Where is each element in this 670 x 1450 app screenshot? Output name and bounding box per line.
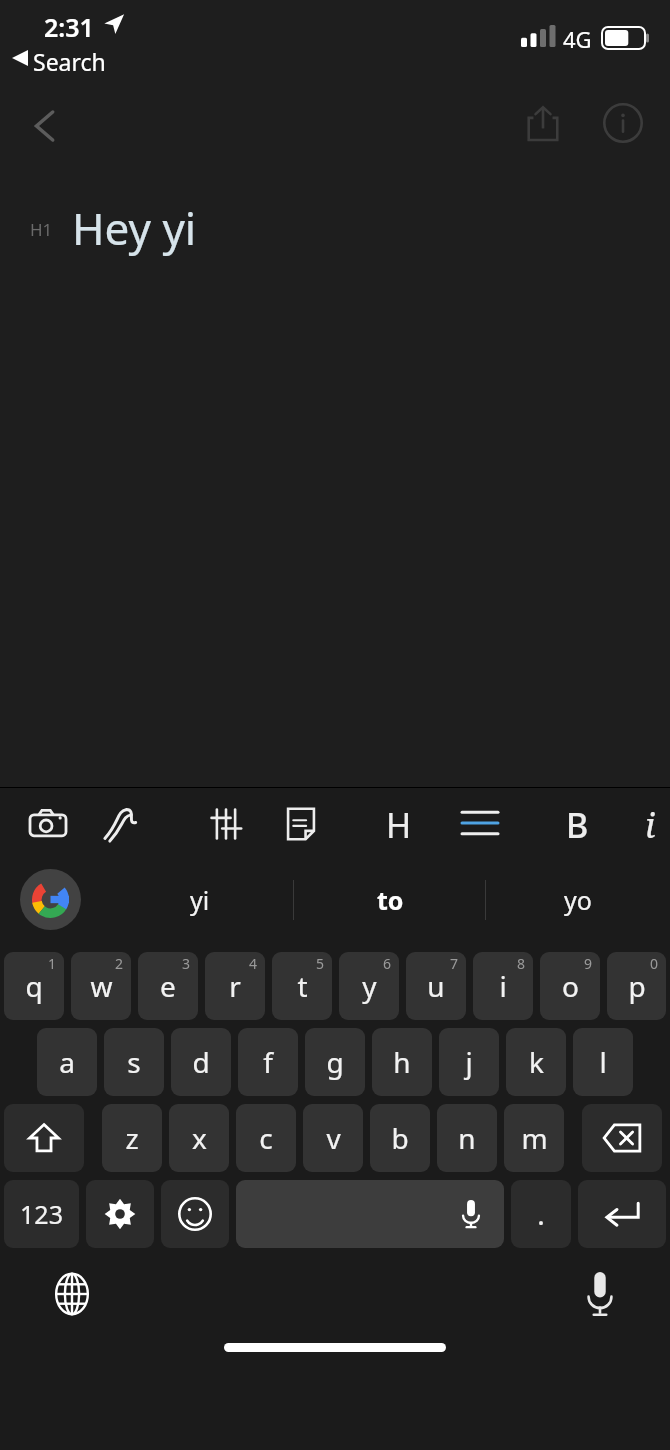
button[interactable]: Shift (4, 1104, 84, 1172)
button[interactable]: Note (277, 800, 325, 848)
staticText: n (458, 1119, 476, 1157)
button[interactable]: Change language (44, 1266, 100, 1322)
staticText: to (377, 883, 404, 917)
button[interactable]: Emoji (161, 1180, 229, 1248)
staticText: 1 (48, 954, 57, 973)
staticText: . (537, 1195, 545, 1233)
button[interactable]: k (506, 1028, 566, 1096)
staticText: 6 (383, 954, 392, 973)
button[interactable]: o (540, 952, 600, 1020)
staticText: a (59, 1043, 75, 1081)
button[interactable]: s (104, 1028, 164, 1096)
button[interactable]: Share (516, 96, 570, 150)
button[interactable]: f (238, 1028, 298, 1096)
button[interactable]: Info (596, 96, 650, 150)
staticText: e (160, 967, 176, 1005)
staticText: 123 (20, 1197, 63, 1231)
staticText: q (25, 967, 43, 1005)
button[interactable]: n (437, 1104, 497, 1172)
staticText: 0 (650, 954, 659, 973)
staticText: 5 (316, 954, 325, 973)
button[interactable]: Settings (86, 1180, 154, 1248)
staticText: 4 (249, 954, 258, 973)
button[interactable]: . (511, 1180, 571, 1248)
staticText: 2 (115, 954, 124, 973)
button[interactable]: b (370, 1104, 430, 1172)
staticText: 7 (450, 954, 459, 973)
staticText: yi (190, 883, 210, 917)
staticText: w (90, 967, 113, 1005)
staticText: v (326, 1119, 341, 1157)
button[interactable]: Camera (24, 800, 72, 848)
staticText: s (127, 1043, 141, 1081)
staticText: g (326, 1043, 344, 1081)
staticText: 2:31 (44, 10, 94, 44)
button[interactable]: z (102, 1104, 162, 1172)
staticText: b (391, 1119, 409, 1157)
staticText: r (229, 967, 241, 1005)
button[interactable]: a (37, 1028, 97, 1096)
button[interactable]: i (645, 802, 656, 848)
staticText: k (529, 1043, 544, 1081)
button[interactable]: d (171, 1028, 231, 1096)
button[interactable]: j (439, 1028, 499, 1096)
button[interactable]: B (566, 802, 589, 848)
staticText: d (192, 1043, 210, 1081)
button[interactable]: Backspace (582, 1104, 662, 1172)
button[interactable]: Voice input (572, 1266, 628, 1322)
button[interactable]: Draw (98, 800, 146, 848)
button[interactable]: i (473, 952, 533, 1020)
button[interactable]: e (138, 952, 198, 1020)
button[interactable]: Search (33, 46, 106, 77)
staticText: y (362, 967, 377, 1005)
button[interactable]: r (205, 952, 265, 1020)
button[interactable]: v (303, 1104, 363, 1172)
button[interactable]: yi (110, 858, 290, 942)
staticText: 3 (182, 954, 191, 973)
button[interactable]: Space (236, 1180, 504, 1248)
button[interactable]: h (372, 1028, 432, 1096)
staticText: i (499, 967, 507, 1005)
staticText: 4G (563, 24, 592, 54)
button[interactable]: c (236, 1104, 296, 1172)
button[interactable]: y (339, 952, 399, 1020)
button[interactable]: Google (20, 869, 81, 930)
staticText: l (599, 1043, 607, 1081)
button[interactable]: Format options (202, 800, 250, 848)
button[interactable]: t (272, 952, 332, 1020)
staticText: h (393, 1043, 411, 1081)
button[interactable]: 123 (4, 1180, 79, 1248)
button[interactable]: yo (488, 858, 668, 942)
staticText: 9 (584, 954, 593, 973)
button[interactable]: u (406, 952, 466, 1020)
staticText: yo (564, 883, 592, 917)
staticText: u (427, 967, 445, 1005)
staticText: z (125, 1119, 139, 1157)
staticText: f (263, 1043, 273, 1081)
button[interactable]: m (504, 1104, 564, 1172)
staticText: t (297, 967, 308, 1005)
staticText: H1 (30, 218, 53, 241)
staticText: o (562, 967, 579, 1005)
button[interactable]: q (4, 952, 64, 1020)
button[interactable]: x (169, 1104, 229, 1172)
staticText: m (521, 1119, 548, 1157)
button[interactable]: Back (18, 98, 74, 154)
button[interactable]: w (71, 952, 131, 1020)
button[interactable]: g (305, 1028, 365, 1096)
button[interactable]: List (452, 802, 508, 844)
staticText: 8 (517, 954, 526, 973)
button[interactable]: l (573, 1028, 633, 1096)
staticText: Hey yi (72, 198, 197, 258)
staticText: x (192, 1119, 207, 1157)
button[interactable]: Enter (578, 1180, 666, 1248)
staticText: j (465, 1043, 473, 1081)
button[interactable]: H (386, 802, 412, 848)
button[interactable]: p (607, 952, 666, 1020)
button[interactable]: to (296, 858, 484, 942)
staticText: c (259, 1119, 273, 1157)
staticText: p (628, 967, 646, 1005)
